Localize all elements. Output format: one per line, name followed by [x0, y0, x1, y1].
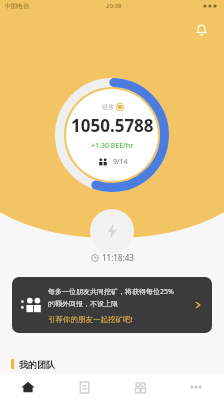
staticText: 中国电信 [5, 2, 29, 10]
button[interactable]: Notifications [189, 17, 213, 41]
staticText: +1.30 BEE/hr [91, 141, 134, 151]
staticText: 11:18:43 [102, 252, 134, 263]
button[interactable]: 我的团队 [0, 355, 224, 373]
staticText: 9/14 [113, 157, 128, 167]
button[interactable]: 每多一位朋友共同挖矿，将获得每位25% [12, 277, 212, 333]
staticText: 引荐你的朋友一起挖矿吧! [48, 314, 133, 324]
button[interactable]: More [168, 374, 224, 400]
button[interactable]: 链接 [66, 89, 158, 181]
staticText: 1050.5788 [71, 114, 154, 137]
button[interactable]: Team [112, 374, 168, 400]
button[interactable]: Start mining [90, 209, 134, 253]
button[interactable]: Home [0, 374, 56, 400]
staticText: 的额外回报，不设上限 [48, 299, 118, 308]
staticText: 每多一位朋友共同挖矿，将获得每位25% [48, 287, 174, 297]
staticText: 我的团队 [19, 359, 55, 370]
staticText: 20:38 [106, 2, 122, 10]
button[interactable]: Records [56, 374, 112, 400]
staticText: 链接 [102, 103, 114, 111]
